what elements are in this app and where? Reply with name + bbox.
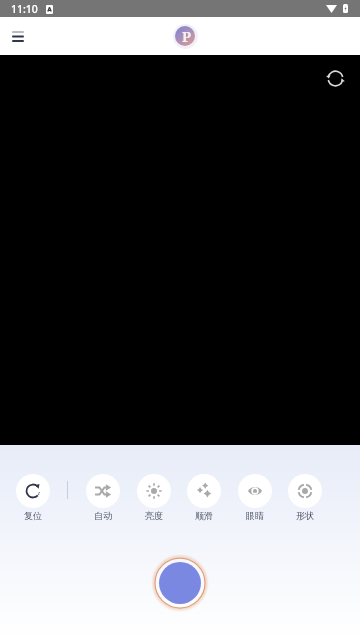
staticText: 亮度: [145, 510, 163, 521]
button[interactable]: 顺滑: [179, 474, 229, 521]
staticText: 眼睛: [246, 510, 264, 521]
button[interactable]: 形状: [280, 474, 330, 521]
staticText: 11:10: [11, 2, 38, 16]
button[interactable]: Profile: [171, 22, 199, 50]
button[interactable]: 眼睛: [230, 474, 280, 521]
staticText: 形状: [296, 510, 314, 521]
staticText: P: [182, 27, 191, 46]
staticText: 顺滑: [195, 510, 213, 521]
button[interactable]: 复位: [8, 474, 58, 521]
button[interactable]: Menu: [0, 19, 35, 54]
staticText: 复位: [24, 510, 42, 521]
button[interactable]: 自动: [78, 474, 128, 521]
button[interactable]: 亮度: [129, 474, 179, 521]
button[interactable]: Capture: [148, 551, 212, 615]
button[interactable]: Rotate: [322, 65, 348, 91]
staticText: 自动: [94, 510, 112, 521]
